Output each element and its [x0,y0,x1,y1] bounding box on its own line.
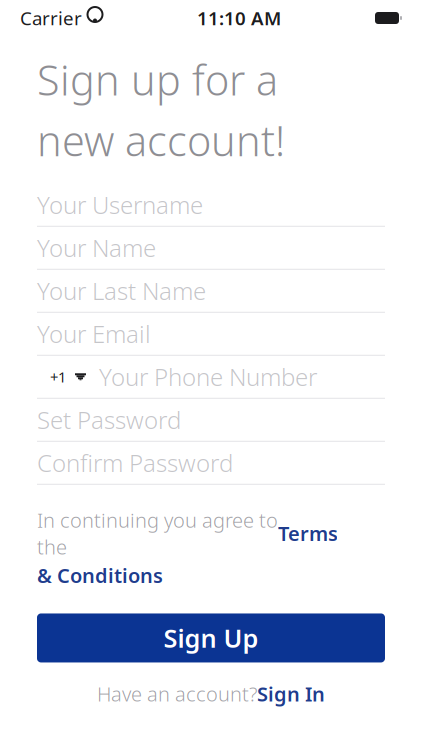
staticText: In continuing you agree to the [37,507,278,560]
button[interactable]: Confirm Password [37,442,385,485]
button[interactable]: Sign Up [37,613,385,662]
staticText: Confirm Password [37,447,233,479]
staticText: Sign In [257,680,325,707]
staticText: new account! [37,113,285,168]
button[interactable]: Your Username [37,184,385,227]
staticText: & Conditions [37,562,163,588]
staticText: Your Username [37,189,203,221]
staticText: Set Password [37,404,181,436]
staticText: Sign up for a [37,52,278,107]
staticText: Your Last Name [37,275,206,307]
button[interactable]: Your Email [37,313,385,356]
button[interactable]: Your Name [37,227,385,270]
button[interactable]: & Conditions [37,562,163,588]
staticText: Sign Up [163,621,258,655]
button[interactable]: Your Phone Number [99,356,385,398]
button[interactable]: +1 [37,356,99,398]
staticText: Your Name [37,232,156,264]
button[interactable]: Set Password [37,399,385,442]
staticText: Your Email [37,318,151,350]
button[interactable]: Sign In [257,680,325,707]
staticText: 11:10 AM [197,6,281,30]
button[interactable]: Terms [278,520,338,547]
staticText: Terms [278,520,338,547]
staticText: Your Phone Number [99,361,317,393]
staticText: Have an account? [97,680,257,707]
staticText: Carrier [20,6,82,30]
button[interactable]: Your Last Name [37,270,385,313]
staticText: +1 [50,367,66,386]
